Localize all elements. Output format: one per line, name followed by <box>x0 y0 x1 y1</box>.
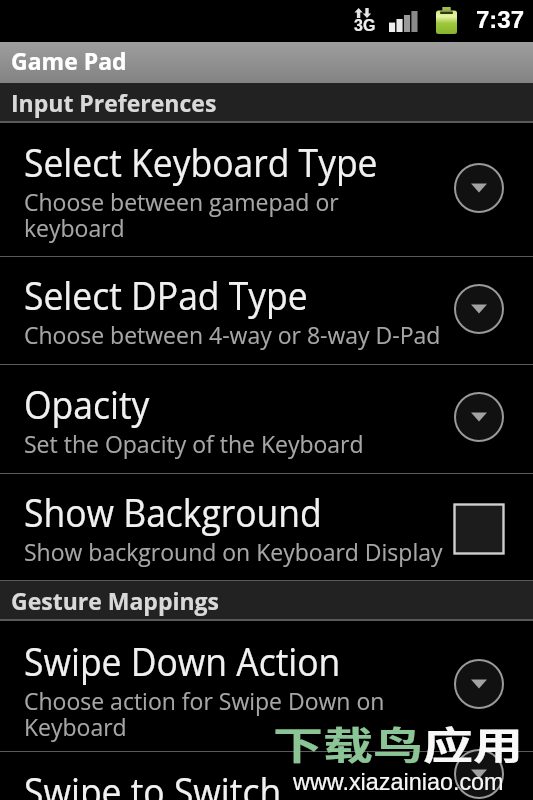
button[interactable]: Show Background <box>0 474 533 581</box>
staticText: 7:37 <box>476 6 525 33</box>
staticText: Select DPad Type <box>24 268 308 321</box>
button[interactable]: Open list <box>453 658 505 710</box>
staticText: Opacity <box>24 377 150 430</box>
button[interactable]: Swipe Down Action <box>0 621 533 752</box>
other: 3G network <box>354 8 376 38</box>
button[interactable]: Show Background <box>453 503 505 555</box>
other: Signal strength <box>389 11 419 32</box>
button[interactable]: Select DPad Type <box>0 257 533 365</box>
button[interactable]: Swipe to Switch <box>0 752 533 800</box>
staticText: Gesture Mappings <box>11 585 220 616</box>
staticText: Show background on Keyboard Display <box>24 536 443 567</box>
other: Battery <box>436 7 457 34</box>
staticText: www.xiazainiao.com <box>293 769 504 795</box>
staticText: Swipe to Switch <box>24 764 282 800</box>
staticText: Choose between 4-way or 8-way D-Pad <box>24 319 441 350</box>
staticText: Choose action for Swipe Down on Keyboard <box>24 685 443 743</box>
staticText: Input Preferences <box>11 87 217 118</box>
staticText: Select Keyboard Type <box>24 135 378 188</box>
button[interactable]: Open list <box>453 391 505 443</box>
staticText: Swipe Down Action <box>24 634 341 687</box>
staticText: Set the Opacity of the Keyboard <box>24 428 364 459</box>
staticText: Choose between gamepad or keyboard <box>24 186 443 244</box>
button[interactable]: Open list <box>453 162 505 214</box>
staticText: 下载鸟 <box>273 715 423 770</box>
staticText: 应用 <box>423 715 523 770</box>
button[interactable]: Open list <box>453 283 505 335</box>
button[interactable]: Select Keyboard Type <box>0 123 533 257</box>
staticText: Game Pad <box>11 45 127 76</box>
staticText: Show Background <box>24 485 322 538</box>
button[interactable]: Open list <box>453 750 505 798</box>
button[interactable]: Opacity <box>0 365 533 474</box>
staticText: 3G <box>354 17 376 35</box>
